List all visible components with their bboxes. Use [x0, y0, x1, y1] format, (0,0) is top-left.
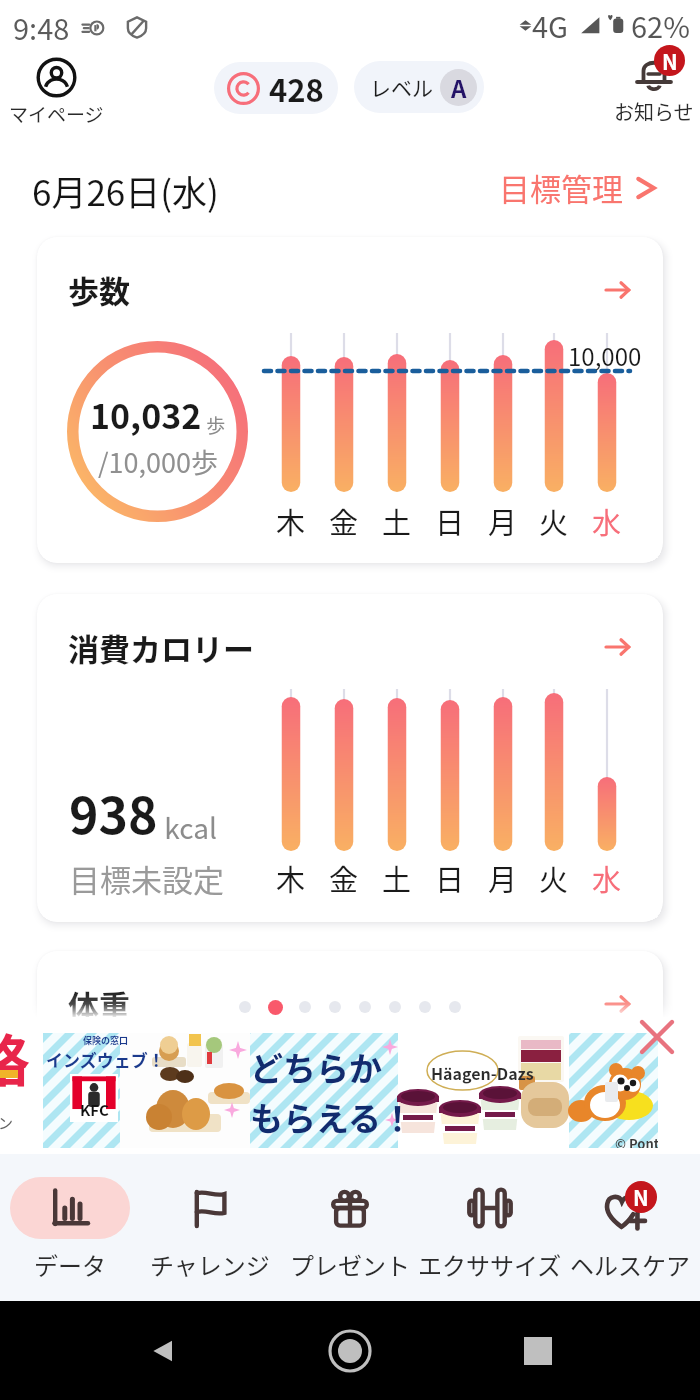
staticText: 目標管理 — [499, 165, 623, 210]
button[interactable]: マイページ — [9, 57, 104, 128]
staticText: 月 — [488, 500, 518, 540]
button[interactable]: ページ ${i + 1} — [230, 992, 260, 1022]
button[interactable]: プレゼント — [280, 1154, 420, 1301]
button[interactable]: レベル — [354, 61, 484, 113]
button[interactable]: データ — [0, 1154, 140, 1301]
staticText: 目標未設定 — [69, 856, 224, 901]
staticText: 歩数 — [68, 267, 130, 312]
staticText: /10,000歩 — [98, 442, 219, 481]
staticText: 体重 — [68, 982, 130, 1027]
button[interactable]: ページ ${i + 1} — [290, 992, 320, 1022]
staticText: A — [451, 70, 467, 105]
staticText: レベル — [370, 72, 433, 102]
staticText: どちらか — [250, 1043, 382, 1091]
staticText: 水 — [592, 500, 622, 540]
staticText: 62% — [631, 4, 690, 46]
staticText: © Ponta — [615, 1134, 658, 1148]
staticText: 938 — [69, 776, 158, 848]
button[interactable]: 広告を閉じる — [636, 1016, 678, 1058]
staticText: 土 — [382, 500, 412, 540]
staticText: 火 — [539, 500, 569, 540]
button[interactable]: 詳細を見る — [603, 275, 633, 305]
staticText: チャレンジ — [150, 1247, 270, 1282]
staticText: Häagen-Dazs — [431, 1061, 534, 1084]
staticText: 428 — [269, 66, 324, 111]
staticText: エクササイズ — [418, 1247, 562, 1282]
button[interactable]: ページ ${i + 1} — [410, 992, 440, 1022]
button[interactable]: 消費カロリー — [37, 594, 663, 922]
staticText: データ — [34, 1247, 106, 1282]
button[interactable]: ページ ${i + 1} — [440, 992, 470, 1022]
staticText: 4G — [532, 4, 569, 46]
staticText: 月 — [488, 857, 518, 897]
staticText: 消費カロリー — [68, 625, 254, 670]
staticText: 9:48 — [13, 6, 70, 48]
staticText: 10,000 — [568, 338, 642, 373]
staticText: マイページ — [9, 100, 104, 128]
staticText: 土 — [382, 857, 412, 897]
staticText: 木 — [276, 857, 306, 897]
button[interactable]: 428 — [214, 62, 338, 114]
button[interactable]: 歩数 — [37, 237, 663, 563]
button[interactable]: チャレンジ — [140, 1154, 280, 1301]
button[interactable]: ページ ${i + 1} — [320, 992, 350, 1022]
staticText: 金 — [329, 500, 359, 540]
button[interactable]: 保険の窓口 — [43, 1033, 658, 1148]
staticText: N — [662, 46, 678, 76]
button[interactable]: ページ ${i + 1} — [380, 992, 410, 1022]
button[interactable]: 体重 — [37, 951, 663, 1151]
staticText: プレゼント — [290, 1247, 410, 1282]
button[interactable]: N — [560, 1154, 700, 1301]
button[interactable]: 詳細を見る — [603, 989, 633, 1019]
button[interactable]: ページ ${i + 1} — [350, 992, 380, 1022]
button[interactable]: お知らせ — [614, 53, 694, 126]
staticText: 木 — [276, 500, 306, 540]
staticText: ヘルスケア — [570, 1247, 690, 1282]
staticText: 歩 — [202, 411, 226, 439]
staticText: 水 — [592, 857, 622, 897]
button[interactable]: 目標管理 — [493, 161, 664, 214]
staticText: 6月26日(水) — [32, 165, 219, 216]
staticText: 10,032 — [90, 390, 202, 439]
button[interactable]: 詳細を見る — [603, 632, 633, 662]
staticText: KFC — [80, 1099, 109, 1121]
staticText: インズウェブ！ — [46, 1047, 165, 1072]
staticText: 火 — [539, 857, 569, 897]
staticText: もらえる！ — [250, 1093, 415, 1141]
staticText: 保険の窓口 — [83, 1034, 129, 1047]
staticText: 格 — [0, 1016, 30, 1097]
staticText: 日 — [435, 857, 465, 897]
button[interactable]: ページ ${i + 1} — [260, 992, 290, 1022]
staticText: 金 — [329, 857, 359, 897]
staticText: お知らせ — [614, 97, 694, 126]
staticText: N — [633, 1182, 649, 1212]
staticText: kcal — [158, 807, 217, 848]
staticText: ーポン — [0, 1112, 14, 1134]
button[interactable]: エクササイズ — [420, 1154, 560, 1301]
staticText: 日 — [435, 500, 465, 540]
